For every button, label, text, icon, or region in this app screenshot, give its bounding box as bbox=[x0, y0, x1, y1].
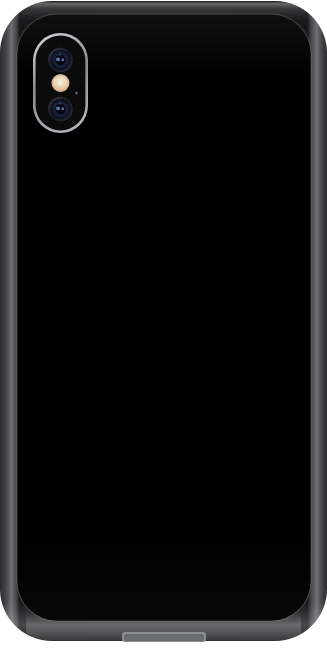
button[interactable]: Phone case product photo bbox=[0, 0, 327, 650]
